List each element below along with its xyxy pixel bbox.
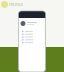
staticText: PROFILE <box>9 2 23 7</box>
